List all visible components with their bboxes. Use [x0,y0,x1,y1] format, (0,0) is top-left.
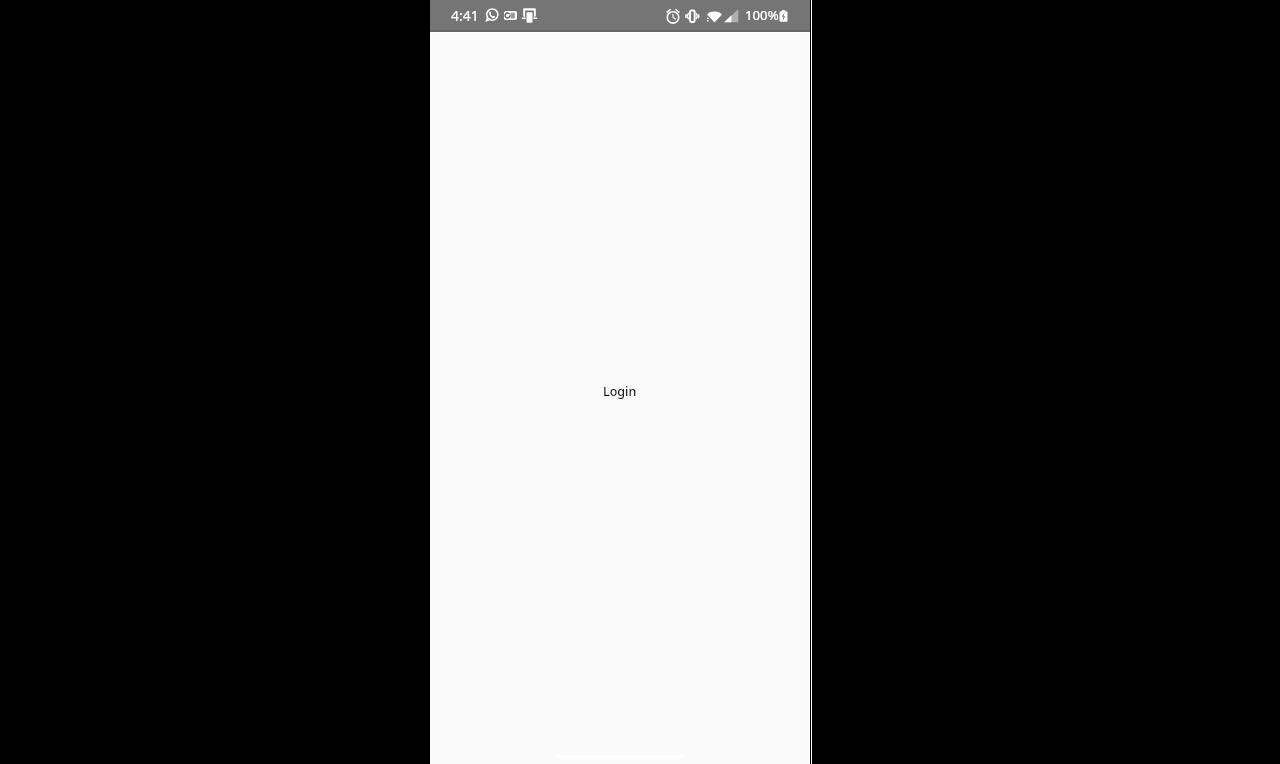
staticText: 100% [745,6,779,24]
button[interactable]: Login [595,379,645,404]
staticText: Login [603,383,637,400]
staticText: 4:41 [451,6,479,25]
